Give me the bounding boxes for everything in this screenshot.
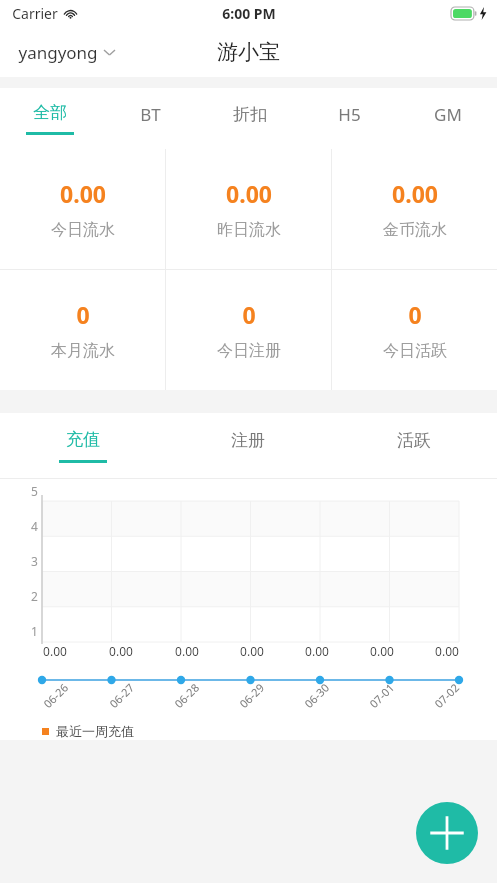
staticText: 06-27 [106,680,137,711]
staticText: BT [140,103,161,126]
button[interactable]: 0 [332,270,497,390]
staticText: 2 [31,588,38,604]
button[interactable]: 全部 [0,88,100,149]
staticText: 0.00 [60,178,106,209]
staticText: 金币流水 [383,220,447,240]
staticText: 1 [31,623,38,639]
staticText: 0.00 [370,643,394,659]
button[interactable]: 充值 [0,413,165,478]
staticText: 今日活跃 [383,341,447,361]
staticText: 0.00 [43,643,67,659]
staticText: 充值 [66,429,100,450]
staticText: 0.00 [240,643,264,659]
staticText: 5 [31,483,38,499]
button[interactable]: H5 [299,88,398,149]
button[interactable]: 注册 [165,413,331,478]
staticText: 游小宝 [217,39,280,65]
staticText: 今日注册 [217,341,281,361]
staticText: 折扣 [233,104,267,125]
staticText: 本月流水 [51,341,115,361]
staticText: 0 [242,299,256,330]
staticText: 06-29 [236,680,267,711]
staticText: 最近一周充值 [56,723,134,739]
button[interactable]: yangyong [18,41,115,64]
staticText: 注册 [231,430,265,451]
staticText: 6:00 PM [222,4,276,23]
button[interactable]: 折扣 [200,88,299,149]
staticText: 活跃 [397,430,431,451]
button[interactable]: 0 [0,270,165,390]
staticText: 全部 [33,102,67,123]
button[interactable]: BT [100,88,200,149]
staticText: 06-28 [171,680,202,711]
button[interactable]: 0.00 [166,149,331,269]
staticText: 07-02 [431,680,462,711]
staticText: 0.00 [175,643,199,659]
button[interactable]: 活跃 [331,413,497,478]
button[interactable]: 0.00 [0,149,165,269]
staticText: 0.00 [392,178,438,209]
staticText: 0 [76,299,90,330]
staticText: Carrier [12,4,58,23]
staticText: 0.00 [435,643,459,659]
staticText: 07-01 [366,680,397,711]
staticText: yangyong [18,41,98,64]
staticText: H5 [338,103,361,126]
staticText: 0.00 [109,643,133,659]
staticText: 06-26 [40,680,71,711]
staticText: 0 [408,299,422,330]
button[interactable]: GM [398,88,497,149]
staticText: 今日流水 [51,220,115,240]
staticText: 06-30 [301,680,332,711]
staticText: 4 [31,518,38,534]
staticText: 3 [31,553,38,569]
button[interactable]: 0.00 [332,149,497,269]
staticText: 昨日流水 [217,220,281,240]
staticText: 0.00 [305,643,329,659]
button[interactable]: 0 [166,270,331,390]
staticText: GM [434,103,462,126]
button[interactable]: Add [416,802,478,864]
staticText: 0.00 [226,178,272,209]
